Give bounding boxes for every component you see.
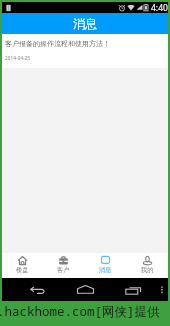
button[interactable]: 楼盘 bbox=[2, 253, 43, 278]
staticText: .hackhome.com[网侠]提供 bbox=[0, 303, 160, 320]
staticText: 4:40 bbox=[151, 2, 168, 13]
button[interactable]: 我的 bbox=[126, 253, 168, 278]
staticText: 消息 bbox=[99, 266, 112, 274]
button[interactable]: 消息 bbox=[84, 253, 126, 278]
staticText: 我的 bbox=[141, 266, 154, 274]
staticText: 2014-04-25 bbox=[5, 55, 31, 62]
staticText: 楼盘 bbox=[16, 266, 29, 274]
button[interactable]: Recent apps bbox=[125, 285, 141, 295]
button[interactable]: 客户报备的操作流程和使用方法！ bbox=[2, 34, 168, 68]
button[interactable]: Back bbox=[30, 286, 45, 294]
staticText: 客户报备的操作流程和使用方法！ bbox=[5, 39, 110, 48]
button[interactable]: Home bbox=[77, 285, 94, 294]
staticText: 消息 bbox=[73, 16, 97, 31]
staticText: 客户 bbox=[57, 266, 70, 274]
button[interactable]: 客户 bbox=[43, 253, 84, 278]
button[interactable]: More options bbox=[158, 284, 166, 295]
